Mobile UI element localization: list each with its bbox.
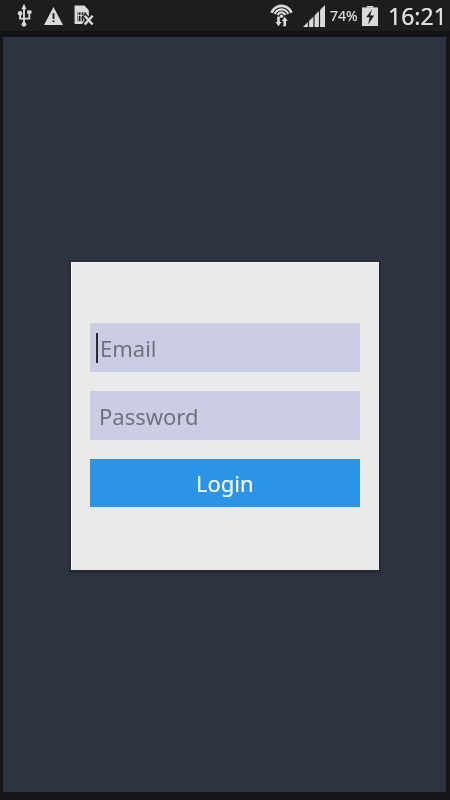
staticText: Email [100, 333, 157, 363]
button[interactable]: Password input field [90, 391, 360, 440]
button[interactable]: Login [90, 459, 360, 507]
staticText: Login [196, 468, 254, 498]
staticText: Password [99, 401, 199, 431]
staticText: 16:21 [388, 0, 447, 31]
button[interactable]: Email input field [90, 323, 360, 372]
staticText: 74% [330, 6, 358, 25]
